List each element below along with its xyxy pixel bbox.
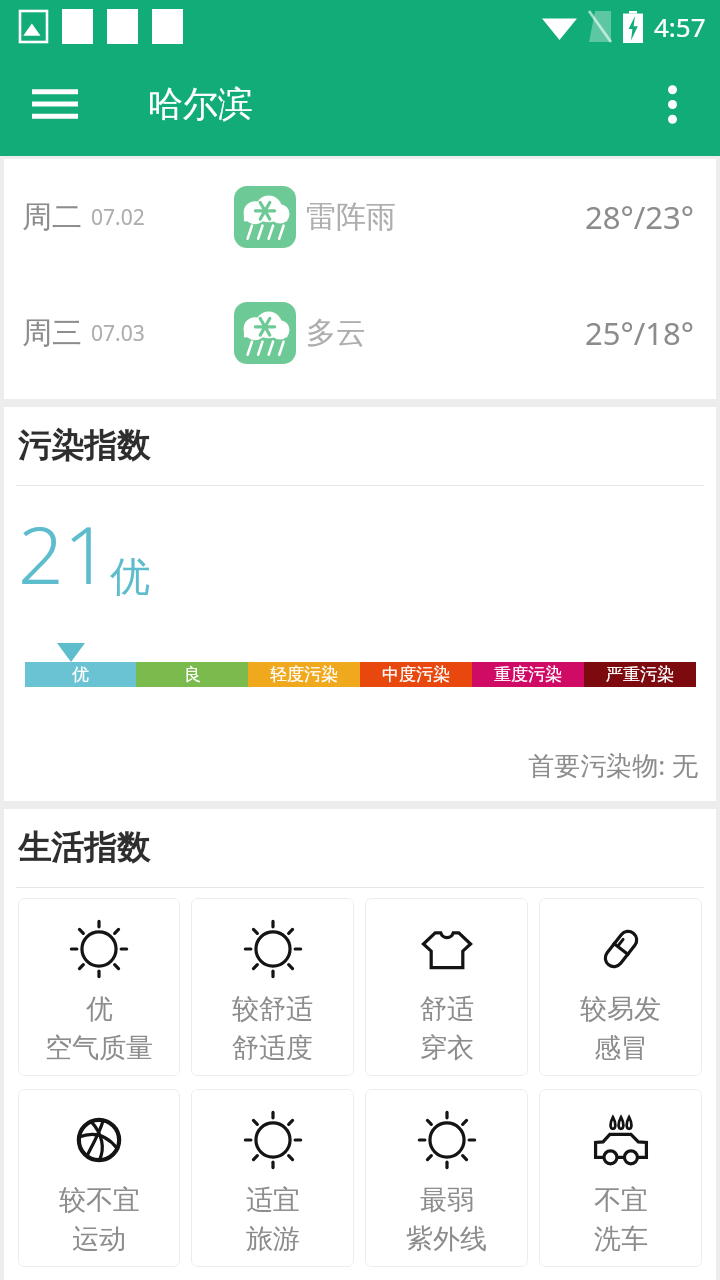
staticText: 感冒 xyxy=(594,1031,648,1065)
button[interactable]: 周三 xyxy=(4,275,716,391)
button[interactable]: 优 xyxy=(25,662,136,687)
staticText: 洗车 xyxy=(594,1222,648,1256)
staticText: 重度污染 xyxy=(494,664,562,685)
staticText: 轻度污染 xyxy=(270,664,338,685)
staticText: 最弱 xyxy=(420,1183,474,1217)
staticText: 优 xyxy=(110,551,150,601)
staticText: 舒适度 xyxy=(232,1031,313,1065)
button[interactable]: 严重污染 xyxy=(584,662,696,687)
button[interactable]: 中度污染 xyxy=(360,662,472,687)
staticText: 污染指数 xyxy=(18,425,150,467)
staticText: 旅游 xyxy=(246,1222,300,1256)
button[interactable]: 轻度污染 xyxy=(248,662,360,687)
staticText: 较舒适 xyxy=(232,992,313,1026)
staticText: 25°/18° xyxy=(585,312,694,354)
button[interactable]: 重度污染 xyxy=(472,662,584,687)
button[interactable]: 较舒适 xyxy=(191,898,354,1076)
button[interactable]: 周二 xyxy=(4,159,716,275)
staticText: 严重污染 xyxy=(606,664,674,685)
staticText: 28°/23° xyxy=(585,196,694,238)
staticText: 周三 xyxy=(22,314,82,352)
staticText: 空气质量 xyxy=(45,1031,153,1065)
staticText: 较不宜 xyxy=(59,1183,140,1217)
staticText: 生活指数 xyxy=(18,827,150,869)
staticText: 紫外线 xyxy=(406,1222,487,1256)
button[interactable]: 优 xyxy=(18,898,180,1076)
staticText: 21 xyxy=(18,498,110,607)
staticText: 周二 xyxy=(22,198,82,236)
staticText: 4:57 xyxy=(654,9,706,44)
staticText: 多云 xyxy=(306,314,366,352)
staticText: 哈尔滨 xyxy=(148,82,253,126)
staticText: 适宜 xyxy=(246,1183,300,1217)
button[interactable]: 适宜 xyxy=(191,1089,354,1267)
staticText: 穿衣 xyxy=(420,1031,474,1065)
staticText: 较易发 xyxy=(580,992,661,1026)
staticText: 运动 xyxy=(72,1222,126,1256)
button[interactable]: 舒适 xyxy=(365,898,528,1076)
staticText: 不宜 xyxy=(594,1183,648,1217)
staticText: 雷阵雨 xyxy=(306,198,396,236)
button[interactable]: 较不宜 xyxy=(18,1089,180,1267)
button[interactable]: 不宜 xyxy=(539,1089,702,1267)
button[interactable]: 良 xyxy=(136,662,248,687)
staticText: 中度污染 xyxy=(382,664,450,685)
staticText: 舒适 xyxy=(420,992,474,1026)
button[interactable]: Menu xyxy=(16,65,94,143)
button[interactable]: 较易发 xyxy=(539,898,702,1076)
staticText: 良 xyxy=(184,664,201,685)
staticText: 优 xyxy=(86,992,113,1026)
staticText: 优 xyxy=(72,664,89,685)
button[interactable]: 最弱 xyxy=(365,1089,528,1267)
staticText: 07.03 xyxy=(91,319,145,348)
staticText: 07.02 xyxy=(91,203,145,232)
button[interactable]: More options xyxy=(636,68,708,140)
staticText: 首要污染物: 无 xyxy=(4,747,698,783)
